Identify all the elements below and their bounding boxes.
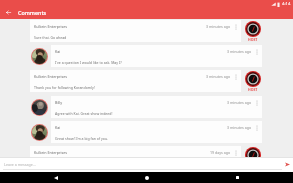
staticText: Kai [55,49,61,54]
button[interactable]: More options [252,98,261,107]
staticText: 4:14 [282,1,291,7]
button[interactable]: Profile [31,124,48,141]
button[interactable]: Back [50,172,61,183]
button[interactable]: Kulbrin Enterprises [30,146,241,157]
staticText: Kulbrin Enterprises [34,150,68,155]
staticText: 3 minutes ago [227,100,252,105]
button[interactable]: Profile [31,48,48,65]
button[interactable]: More options [231,148,240,157]
button[interactable]: Billy [51,96,262,118]
staticText: 3 minutes ago [227,49,252,54]
staticText: I've a question I would like to ask. May… [55,60,122,65]
staticText: Thank you for following Korandomly! [34,85,95,90]
button[interactable]: Send [281,158,293,170]
button[interactable]: Host profile [245,71,261,92]
staticText: Kulbrin Enterprises [34,74,68,79]
button[interactable]: Kai [51,121,262,143]
staticText: 3 minutes ago [206,74,231,79]
button[interactable]: More options [252,47,261,56]
staticText: Billy [55,100,63,105]
staticText: 19 days ago [210,150,231,155]
staticText: Kai [55,125,61,130]
staticText: HOST [248,87,258,92]
staticText: Leave a message... [4,162,36,167]
staticText: Great show! I'm a big fan of you. [55,136,109,141]
staticText: Sure thai. Go ahead [34,35,67,40]
button[interactable]: More options [231,72,240,81]
staticText: 3 minutes ago [206,24,231,29]
button[interactable]: Kulbrin Enterprises [30,20,241,42]
button[interactable]: Back [2,6,15,19]
button[interactable]: Kulbrin Enterprises [30,70,241,92]
staticText: HOST [248,37,258,42]
button[interactable]: More options [231,22,240,31]
button[interactable]: Home [141,172,152,183]
button[interactable]: Profile [31,99,48,116]
button[interactable]: More options [252,123,261,132]
staticText: Comments [18,9,47,16]
button[interactable]: Host profile [245,21,261,42]
button[interactable]: Host profile [245,147,261,157]
staticText: Agree with Kai. Great show indeed! [55,111,113,116]
button[interactable]: Kai [51,45,262,67]
staticText: Kulbrin Enterprises [34,24,68,29]
button[interactable]: Recent apps [232,172,243,183]
staticText: 3 minutes ago [227,125,252,130]
